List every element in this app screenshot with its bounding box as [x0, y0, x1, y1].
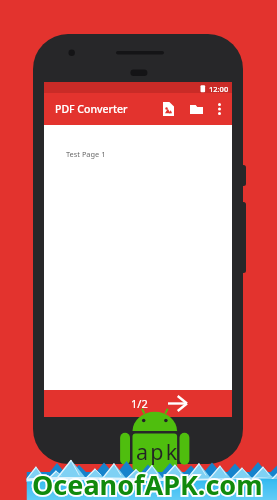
staticText: OceanofAPK.com [32, 466, 263, 500]
button[interactable]: Open folder [183, 93, 209, 125]
staticText: OceanofAPK.com [32, 466, 263, 500]
button[interactable]: Next page [162, 390, 193, 417]
staticText: 12:00 [209, 84, 229, 94]
button[interactable]: More options [208, 93, 230, 125]
staticText: PDF Converter [55, 102, 128, 116]
staticText: apk [136, 437, 180, 466]
staticText: 1/2 [131, 396, 148, 411]
staticText: Test Page 1 [66, 149, 106, 159]
button[interactable]: Convert image [155, 93, 181, 125]
